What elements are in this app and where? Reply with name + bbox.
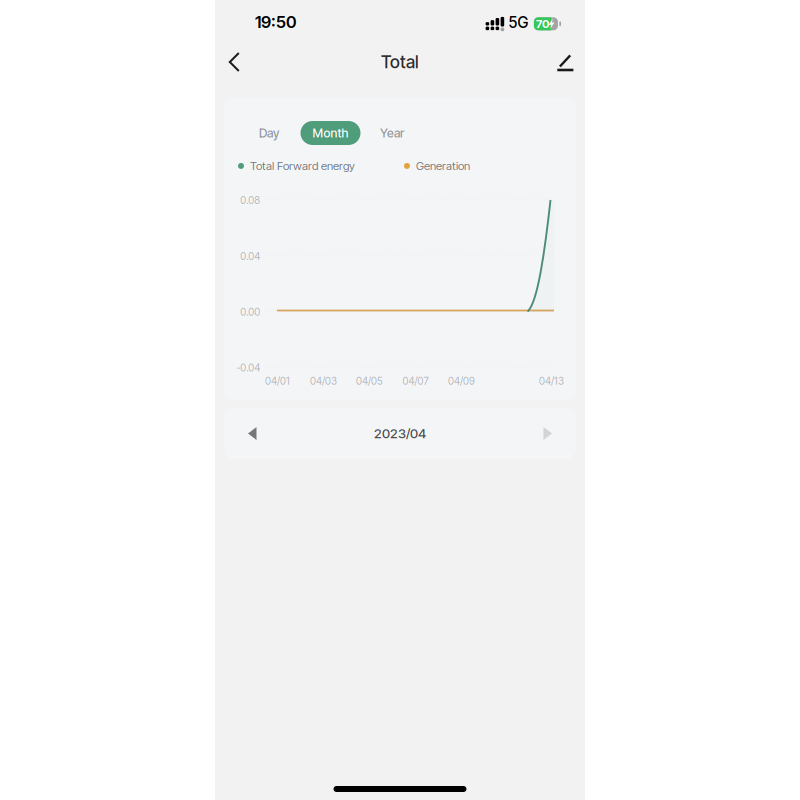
staticText: 04/05 (356, 375, 383, 387)
button[interactable]: Day (250, 121, 288, 145)
staticText: 0.08 (240, 194, 260, 207)
staticText: 0.00 (240, 306, 260, 318)
button[interactable]: Back (217, 42, 252, 82)
staticText: Total Forward energy (250, 159, 355, 173)
staticText: 04/09 (448, 375, 475, 387)
staticText: 0.04 (240, 250, 260, 262)
staticText: 19:50 (255, 12, 296, 32)
button[interactable]: Edit (545, 43, 585, 83)
staticText: 04/07 (402, 375, 428, 387)
staticText: Day (259, 126, 279, 140)
staticText: Month (312, 126, 348, 140)
staticText: Total (381, 51, 419, 72)
staticText: -0.04 (236, 362, 260, 374)
button[interactable]: Year (371, 121, 413, 145)
button[interactable]: Previous period (234, 414, 270, 453)
button[interactable]: Month (300, 121, 360, 145)
staticText: 5G (508, 13, 528, 32)
staticText: Year (380, 126, 404, 140)
staticText: 04/13 (539, 375, 564, 387)
staticText: Generation (416, 159, 470, 173)
staticText: 70 (536, 17, 549, 31)
staticText: 04/01 (265, 375, 290, 387)
button[interactable]: Next period (529, 414, 566, 453)
staticText: 04/03 (310, 375, 337, 387)
staticText: 2023/04 (374, 425, 426, 441)
